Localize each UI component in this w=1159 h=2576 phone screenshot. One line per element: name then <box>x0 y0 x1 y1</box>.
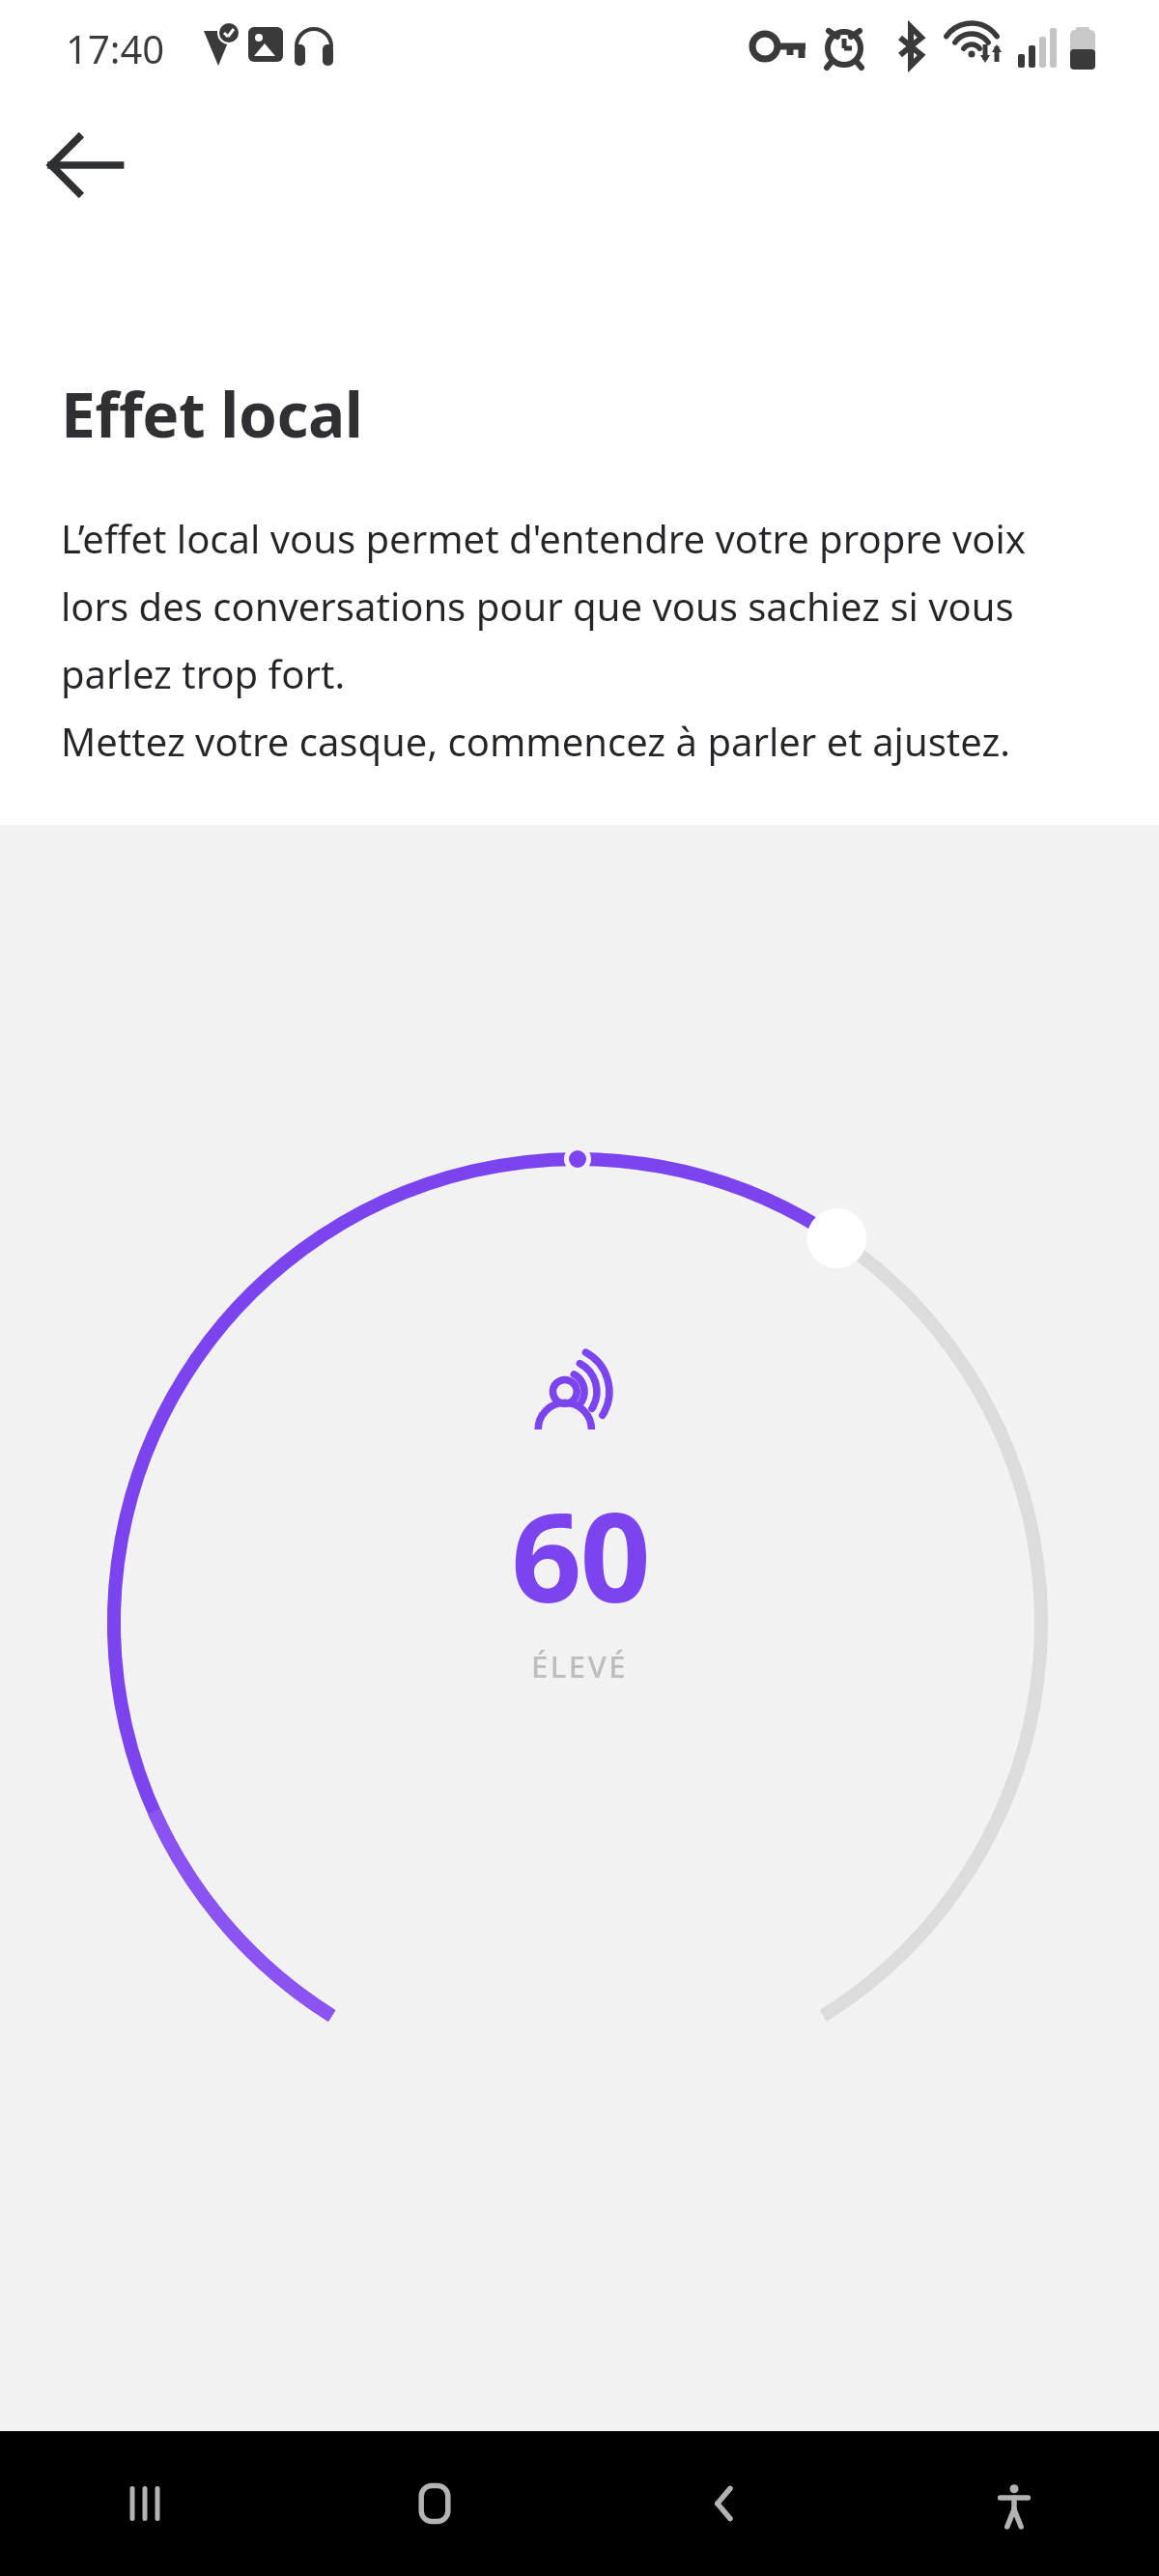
button[interactable]: Back <box>579 2431 869 2576</box>
staticText: L’effet local vous permet d'entendre vot… <box>61 512 1036 768</box>
button[interactable]: Sidetone level 60, high <box>0 825 1159 2431</box>
button[interactable]: Recent apps <box>0 2431 290 2576</box>
staticText: 17:40 <box>66 22 165 74</box>
staticText: ÉLEVÉ <box>531 1646 628 1686</box>
button[interactable]: Home <box>290 2431 579 2576</box>
staticText: Effet local <box>61 372 363 456</box>
button[interactable]: Accessibility <box>869 2431 1159 2576</box>
staticText: 60 <box>511 1470 649 1638</box>
button[interactable]: Back <box>39 119 131 212</box>
